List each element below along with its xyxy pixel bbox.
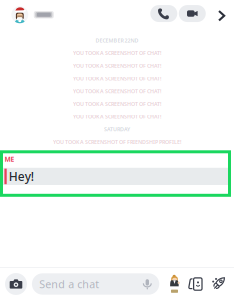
staticText: YOU TOOK A SCREENSHOT OF CHAT! [73,100,161,107]
staticText: YOU TOOK A SCREENSHOT OF CHAT! [73,49,161,57]
staticText: YOU TOOK A SCREENSHOT OF CHAT! [73,88,161,95]
button[interactable]: Profile [0,6,54,23]
staticText: DECEMBER 22ND [95,37,138,44]
button[interactable]: More [211,5,232,25]
staticText: YOU TOOK A SCREENSHOT OF CHAT! [73,113,161,120]
button[interactable]: Video call [179,5,206,22]
staticText: YOU TOOK A SCREENSHOT OF CHAT! [73,62,161,69]
staticText: Send a chat [39,277,99,291]
staticText: ME [5,155,15,164]
staticText: YOU TOOK A SCREENSHOT OF CHAT! [73,75,161,82]
button[interactable]: Send a chat [32,273,159,295]
button[interactable]: Bitmoji [168,274,181,293]
button[interactable]: Stickers [187,274,204,293]
button[interactable]: Camera [5,273,27,295]
staticText: SATURDAY [104,126,130,133]
button[interactable]: Games [211,274,227,293]
staticText: Hey! [9,168,34,184]
button[interactable]: Call [150,5,177,22]
staticText: YOU TOOK A SCREENSHOT OF FRIENDSHIP PROF… [53,138,181,145]
